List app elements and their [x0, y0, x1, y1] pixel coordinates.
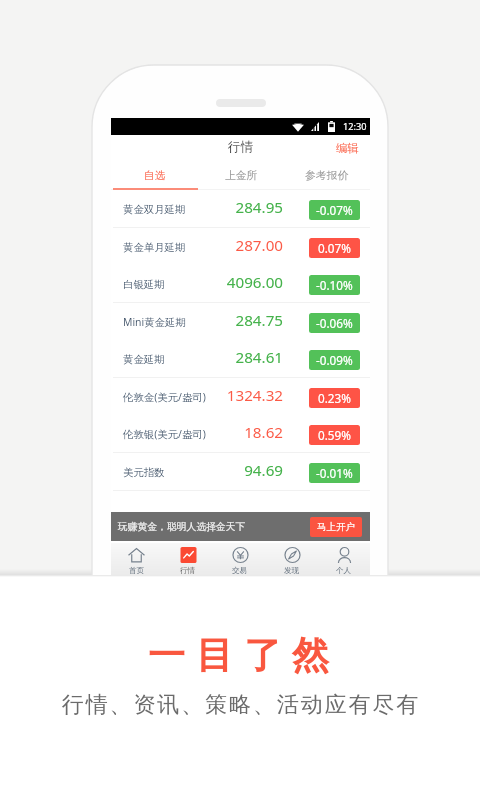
staticText: 287.00: [223, 235, 283, 256]
staticText: Mini黄金延期: [123, 315, 223, 329]
staticText: 上金所: [225, 169, 258, 183]
button[interactable]: 黄金单月延期: [111, 228, 370, 266]
staticText: 18.62: [223, 422, 283, 443]
staticText: 自选: [144, 169, 166, 183]
button[interactable]: 首页: [111, 547, 162, 575]
button[interactable]: 黄金延期: [111, 340, 370, 378]
staticText: 1324.32: [223, 385, 283, 406]
button[interactable]: 交易: [214, 547, 266, 575]
button[interactable]: 自选: [111, 162, 198, 189]
staticText: 284.61: [223, 347, 283, 368]
staticText: 94.69: [223, 460, 283, 481]
button[interactable]: 美元指数: [111, 453, 370, 491]
staticText: -0.09%: [316, 352, 353, 368]
staticText: 黄金单月延期: [123, 241, 223, 254]
staticText: -0.01%: [316, 465, 353, 481]
button[interactable]: 马上开户: [310, 517, 362, 537]
staticText: 交易: [232, 566, 248, 575]
staticText: 首页: [129, 566, 145, 575]
button[interactable]: 参考报价: [284, 162, 370, 189]
staticText: 马上开户: [317, 521, 355, 533]
staticText: 玩赚黄金，聪明人选择金天下: [118, 521, 246, 533]
button[interactable]: 发现: [266, 547, 318, 575]
button[interactable]: 个人: [318, 547, 370, 575]
button[interactable]: Mini黄金延期: [111, 303, 370, 341]
staticText: 参考报价: [305, 169, 349, 183]
staticText: 行情: [180, 566, 196, 575]
staticText: 伦敦银(美元/盎司): [123, 427, 223, 441]
staticText: 0.23%: [318, 390, 351, 406]
staticText: 一目了然: [4, 632, 480, 679]
button[interactable]: 黄金双月延期: [111, 190, 370, 228]
staticText: 发现: [284, 566, 300, 575]
staticText: 美元指数: [123, 466, 223, 479]
button[interactable]: 上金所: [198, 162, 284, 189]
staticText: 284.75: [223, 310, 283, 331]
button[interactable]: 伦敦银(美元/盎司): [111, 415, 370, 453]
staticText: 黄金延期: [123, 353, 223, 366]
staticText: 12:30: [343, 120, 367, 133]
staticText: 0.59%: [318, 427, 351, 443]
button[interactable]: 白银延期: [111, 265, 370, 303]
staticText: 行情、资讯、策略、活动应有尽有: [1, 691, 480, 719]
button[interactable]: 伦敦金(美元/盎司): [111, 378, 370, 416]
staticText: -0.10%: [316, 277, 353, 293]
button[interactable]: 行情: [162, 547, 214, 575]
staticText: 个人: [336, 566, 352, 575]
staticText: 284.95: [223, 197, 283, 218]
staticText: 行情: [228, 139, 254, 155]
staticText: 0.07%: [318, 240, 351, 256]
staticText: 4096.00: [223, 272, 283, 293]
button[interactable]: 编辑: [326, 138, 370, 160]
staticText: 伦敦金(美元/盎司): [123, 390, 223, 404]
staticText: 黄金双月延期: [123, 203, 223, 216]
staticText: 白银延期: [123, 278, 223, 291]
staticText: -0.06%: [316, 315, 353, 331]
staticText: 编辑: [336, 141, 359, 155]
staticText: -0.07%: [316, 202, 353, 218]
